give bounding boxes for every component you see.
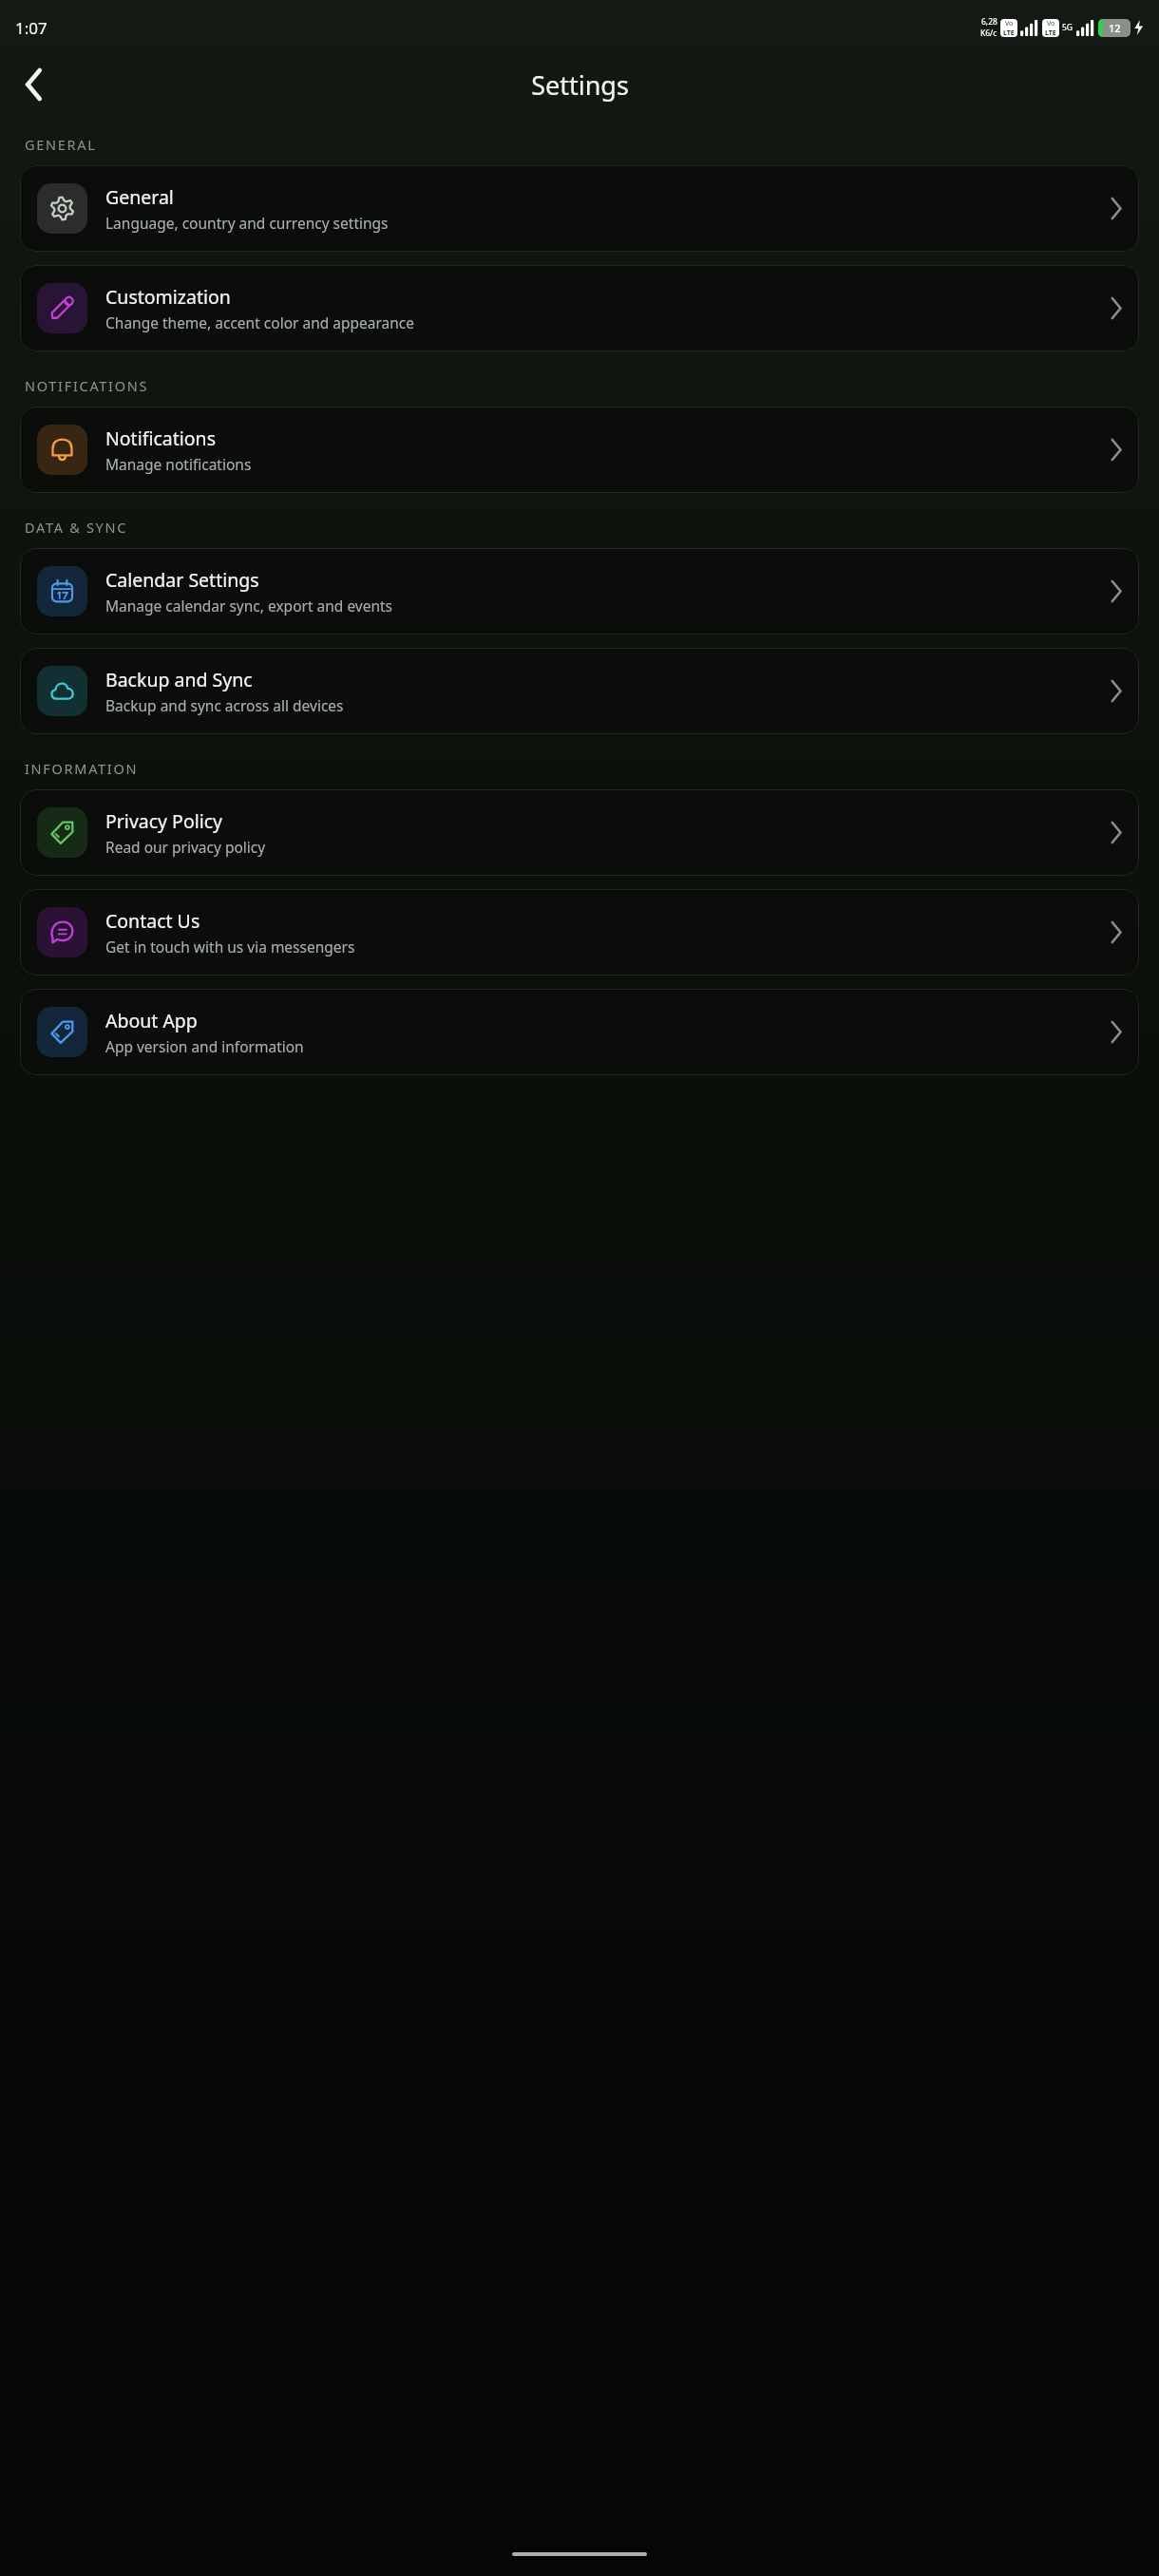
staticText: Backup and sync across all devices <box>105 695 344 715</box>
staticText: 6,28 <box>981 16 997 28</box>
staticText: 1:07 <box>15 17 47 39</box>
button[interactable]: Calendar Settings <box>20 548 1139 635</box>
staticText: Privacy Policy <box>105 808 223 834</box>
staticText: K6/c <box>980 28 997 39</box>
staticText: About App <box>105 1008 198 1033</box>
staticText: App version and information <box>105 1036 304 1056</box>
button[interactable]: Backup and Sync <box>20 648 1139 734</box>
staticText: Notifications <box>105 426 216 451</box>
staticText: Read our privacy policy <box>105 837 266 857</box>
staticText: Backup and Sync <box>105 667 253 692</box>
staticText: Settings <box>531 67 629 103</box>
staticText: Calendar Settings <box>105 567 259 593</box>
staticText: Manage notifications <box>105 454 252 474</box>
button[interactable]: About App <box>20 989 1139 1075</box>
staticText: Get in touch with us via messengers <box>105 937 355 957</box>
button[interactable]: Contact Us <box>20 889 1139 975</box>
staticText: Contact Us <box>105 908 200 934</box>
staticText: GENERAL <box>25 135 97 154</box>
staticText: Language, country and currency settings <box>105 213 389 233</box>
staticText: Manage calendar sync, export and events <box>105 596 393 616</box>
staticText: LTE <box>1045 28 1056 37</box>
staticText: 5G <box>1062 22 1073 33</box>
button[interactable]: Privacy Policy <box>20 789 1139 876</box>
staticText: 12 <box>1109 21 1121 35</box>
button[interactable]: Customization <box>20 265 1139 351</box>
staticText: INFORMATION <box>25 759 139 778</box>
staticText: Customization <box>105 284 231 310</box>
staticText: General <box>105 184 174 210</box>
button[interactable]: Notifications <box>20 407 1139 493</box>
staticText: DATA & SYNC <box>25 518 128 537</box>
button[interactable]: General <box>20 165 1139 252</box>
staticText: NOTIFICATIONS <box>25 376 149 395</box>
staticText: Change theme, accent color and appearanc… <box>105 313 415 332</box>
staticText: LTE <box>1003 28 1015 37</box>
staticText: Vo <box>1047 19 1055 28</box>
staticText: Vo <box>1005 19 1014 28</box>
button[interactable]: Back <box>9 60 59 109</box>
